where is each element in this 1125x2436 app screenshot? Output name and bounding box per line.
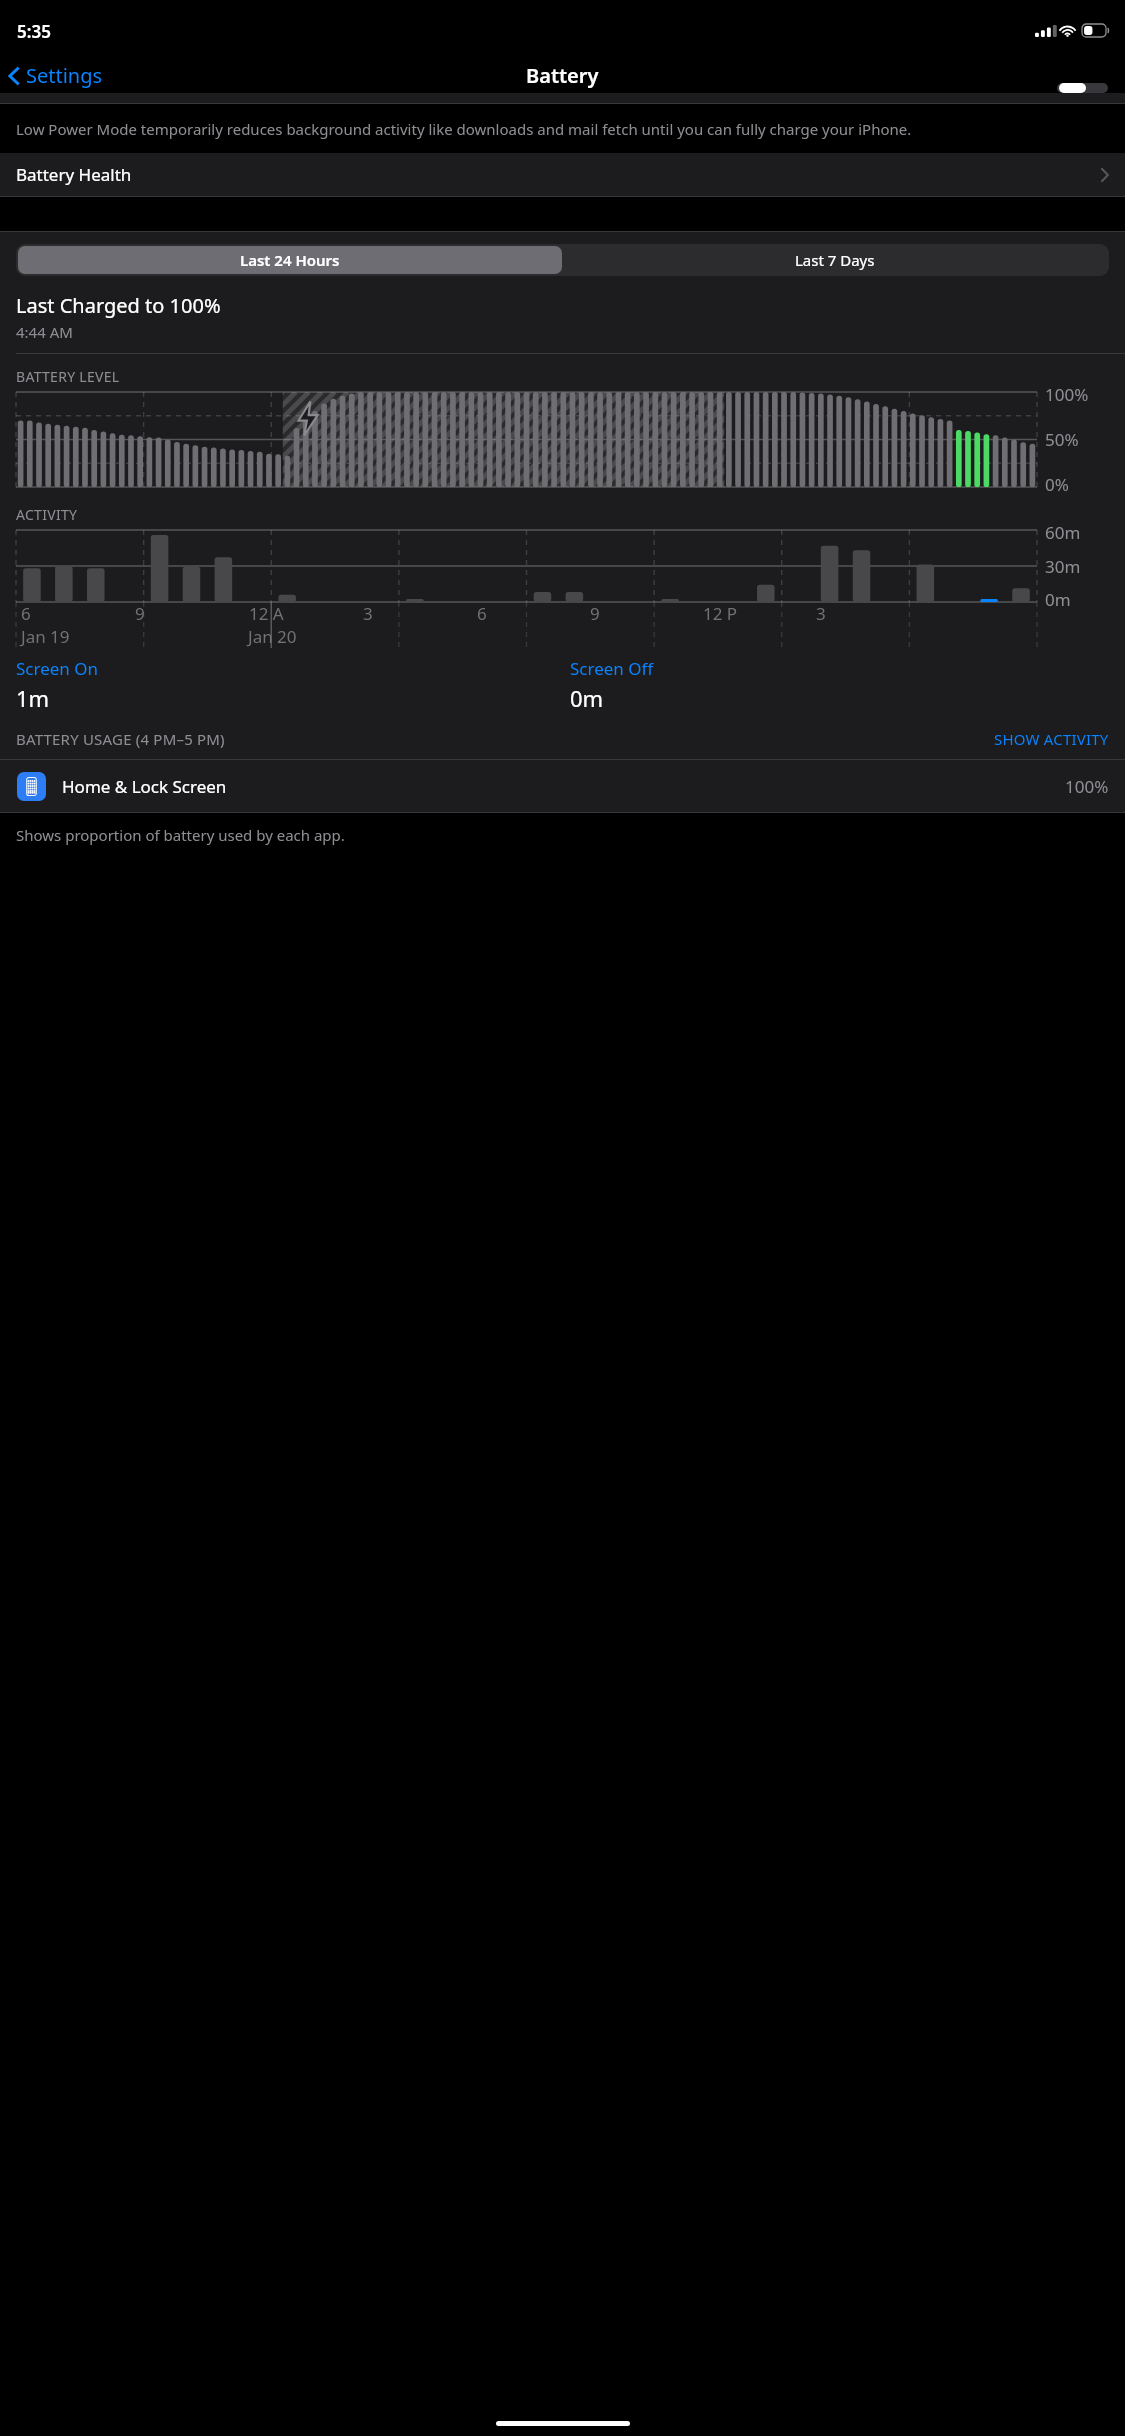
staticText: Battery (526, 62, 599, 89)
staticText: Last 24 Hours (240, 250, 340, 270)
button[interactable]: Last 7 Days (562, 246, 1107, 274)
staticText: 0m (570, 683, 604, 713)
staticText: Screen Off (570, 657, 654, 680)
staticText: 5:35 (17, 20, 51, 43)
staticText: 9 (135, 602, 145, 625)
staticText: Last 7 Days (795, 250, 875, 270)
staticText: Home & Lock Screen (62, 775, 1065, 798)
staticText: Shows proportion of battery used by each… (16, 825, 345, 845)
staticText: 0% (1045, 473, 1069, 496)
button[interactable]: Last 24 Hours (18, 246, 562, 274)
staticText: 50% (1045, 428, 1079, 451)
staticText: 100% (1065, 775, 1109, 798)
staticText: Low Power Mode temporarily reduces backg… (16, 119, 912, 139)
staticText: 12 A (249, 602, 284, 625)
staticText: SHOW ACTIVITY (994, 729, 1109, 749)
staticText: Jan 20 (248, 625, 297, 648)
button[interactable]: Settings (0, 58, 111, 93)
staticText: 3 (363, 602, 373, 625)
staticText: BATTERY USAGE (4 PM–5 PM) (16, 729, 994, 749)
staticText: 30m (1045, 555, 1081, 578)
staticText: 100% (1045, 383, 1089, 406)
button[interactable]: Low Power Mode (1057, 83, 1108, 93)
button[interactable]: Battery Health (0, 153, 1125, 196)
staticText: 4:44 AM (16, 322, 73, 342)
staticText: Screen On (16, 657, 99, 680)
staticText: BATTERY LEVEL (16, 367, 120, 386)
staticText: Battery Health (16, 163, 132, 186)
button[interactable]: Home & Lock Screen (0, 760, 1125, 812)
staticText: Last Charged to 100% (16, 292, 221, 319)
staticText: 6 (21, 602, 31, 625)
staticText: ACTIVITY (16, 505, 78, 524)
button[interactable]: SHOW ACTIVITY (994, 729, 1109, 749)
staticText: Jan 19 (21, 625, 70, 648)
staticText: 6 (477, 602, 487, 625)
staticText: Settings (26, 62, 103, 89)
staticText: 3 (816, 602, 826, 625)
staticText: 60m (1045, 521, 1081, 544)
staticText: 0m (1045, 588, 1071, 611)
staticText: 1m (16, 683, 50, 713)
staticText: 12 P (703, 602, 738, 625)
staticText: 9 (590, 602, 600, 625)
